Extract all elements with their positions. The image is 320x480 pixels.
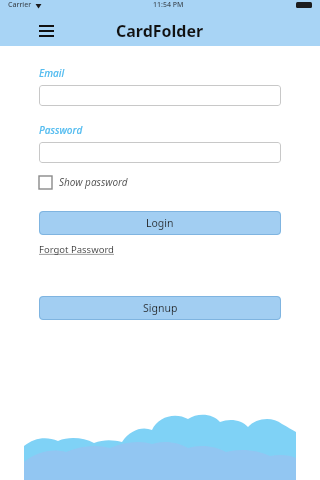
staticText: CardFolder xyxy=(116,20,204,42)
button[interactable]: Menu xyxy=(34,19,58,43)
staticText: 11:54 PM xyxy=(153,0,184,10)
button[interactable]: Login xyxy=(39,211,281,235)
staticText: Signup xyxy=(143,301,178,315)
button[interactable]: Forgot Password xyxy=(39,243,114,256)
staticText: Login xyxy=(146,216,174,230)
button[interactable]: Show password xyxy=(39,173,128,191)
staticText: Email xyxy=(39,66,65,80)
button[interactable] xyxy=(39,85,281,106)
staticText: Carrier xyxy=(8,0,32,10)
staticText: Show password xyxy=(59,175,128,189)
button[interactable]: Signup xyxy=(39,296,281,320)
staticText: Password xyxy=(39,123,83,137)
button[interactable] xyxy=(39,142,281,163)
